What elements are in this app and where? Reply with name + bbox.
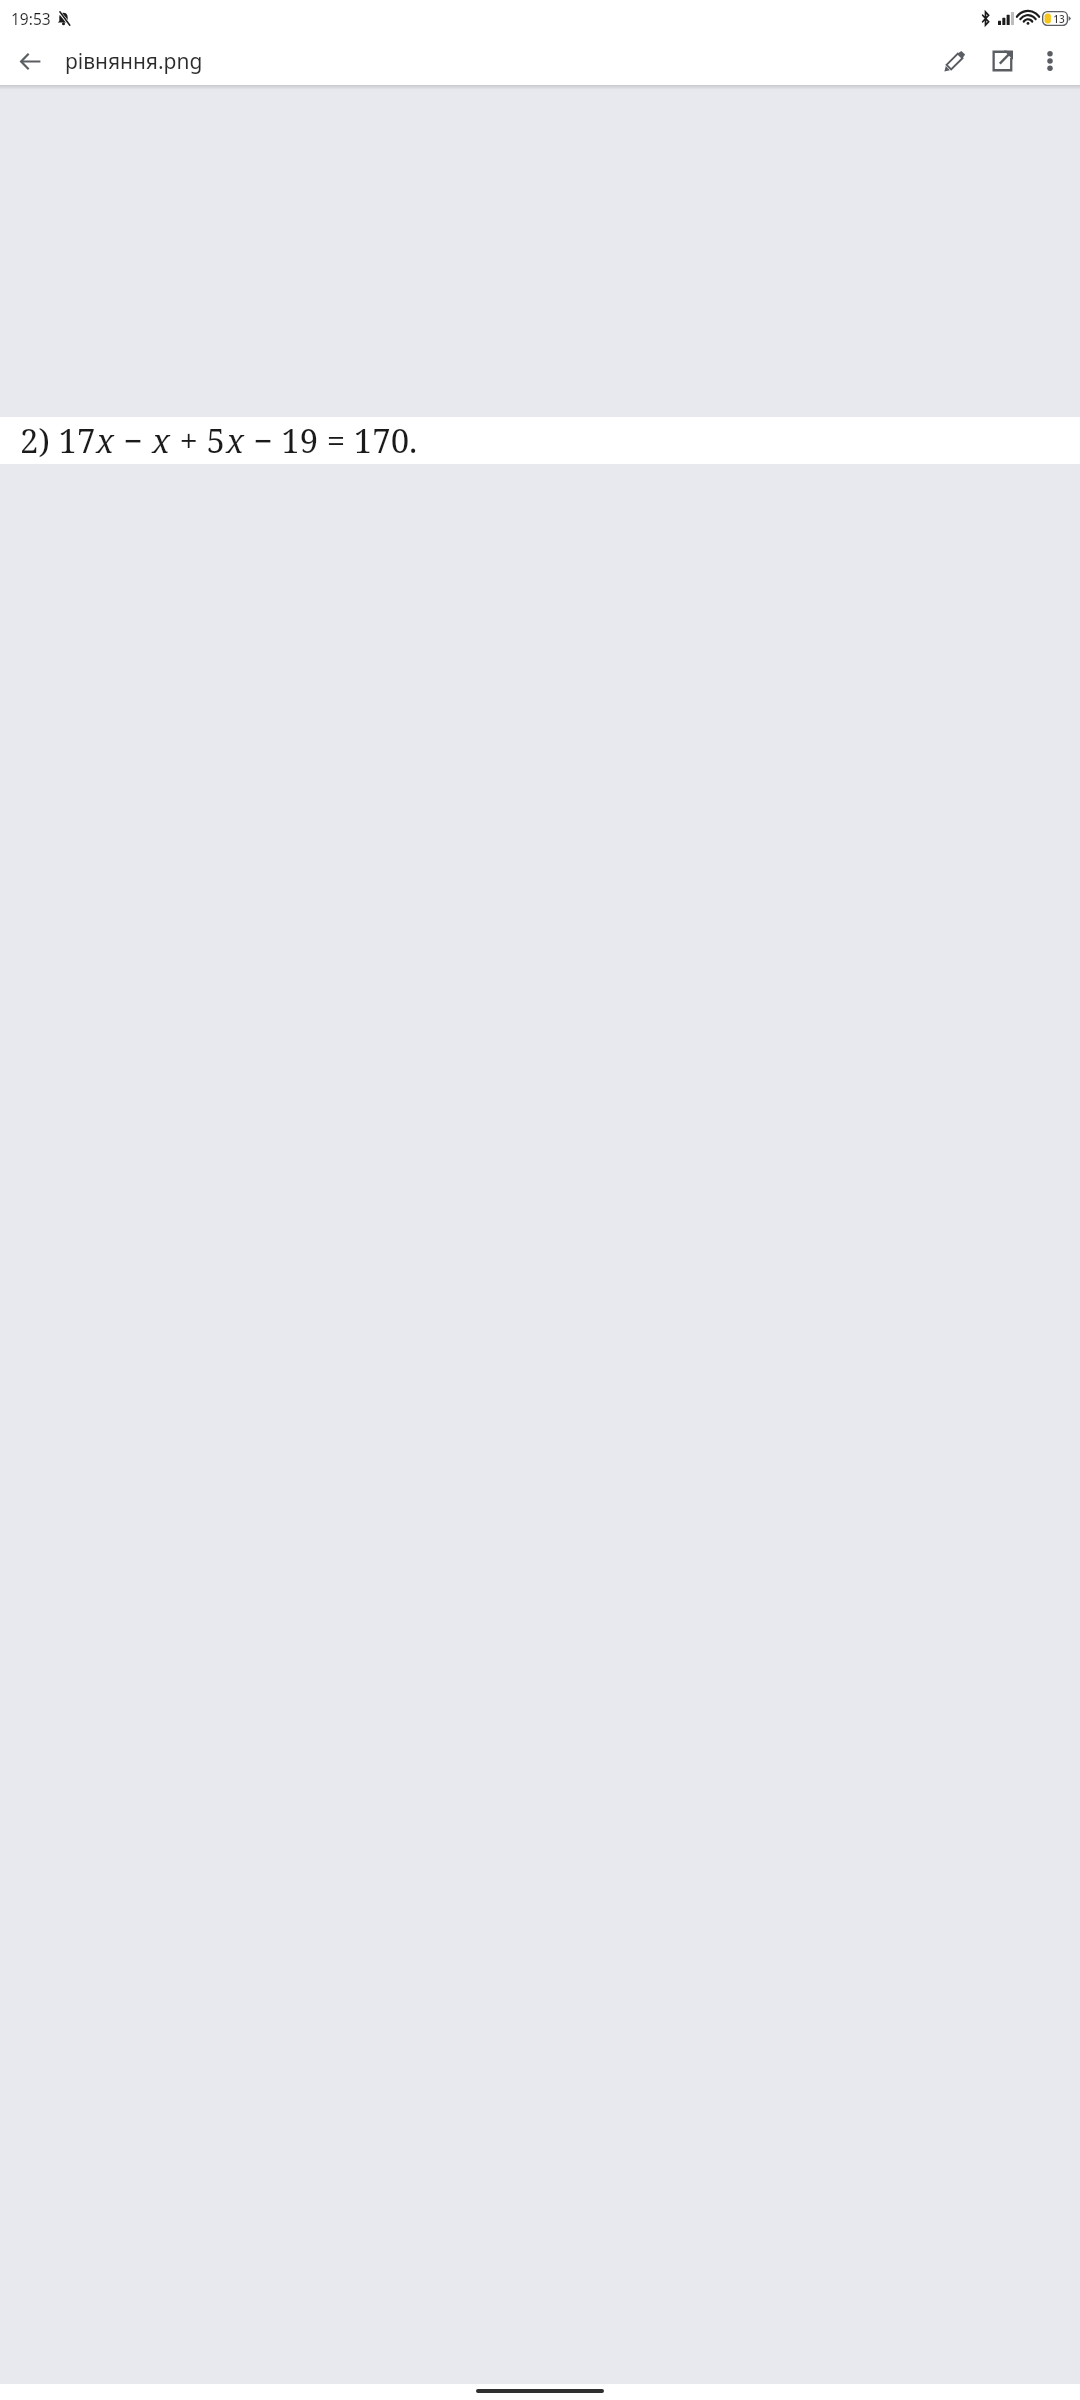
staticText: + 5 bbox=[171, 418, 226, 463]
button[interactable]: Edit bbox=[930, 37, 978, 85]
staticText: − 19 = 170. bbox=[245, 418, 418, 463]
staticText: 2) 17 bbox=[20, 418, 96, 463]
staticText: 19:53 bbox=[11, 8, 51, 29]
staticText: − bbox=[115, 418, 152, 463]
staticText: x bbox=[96, 418, 115, 463]
button[interactable]: Open in new bbox=[978, 37, 1026, 85]
staticText: x bbox=[152, 418, 171, 463]
staticText: x bbox=[226, 418, 245, 463]
button[interactable]: More options bbox=[1026, 37, 1074, 85]
staticText: 13 bbox=[1053, 12, 1065, 26]
button[interactable]: Back bbox=[8, 39, 52, 83]
staticText: рівняння.png bbox=[65, 47, 930, 76]
